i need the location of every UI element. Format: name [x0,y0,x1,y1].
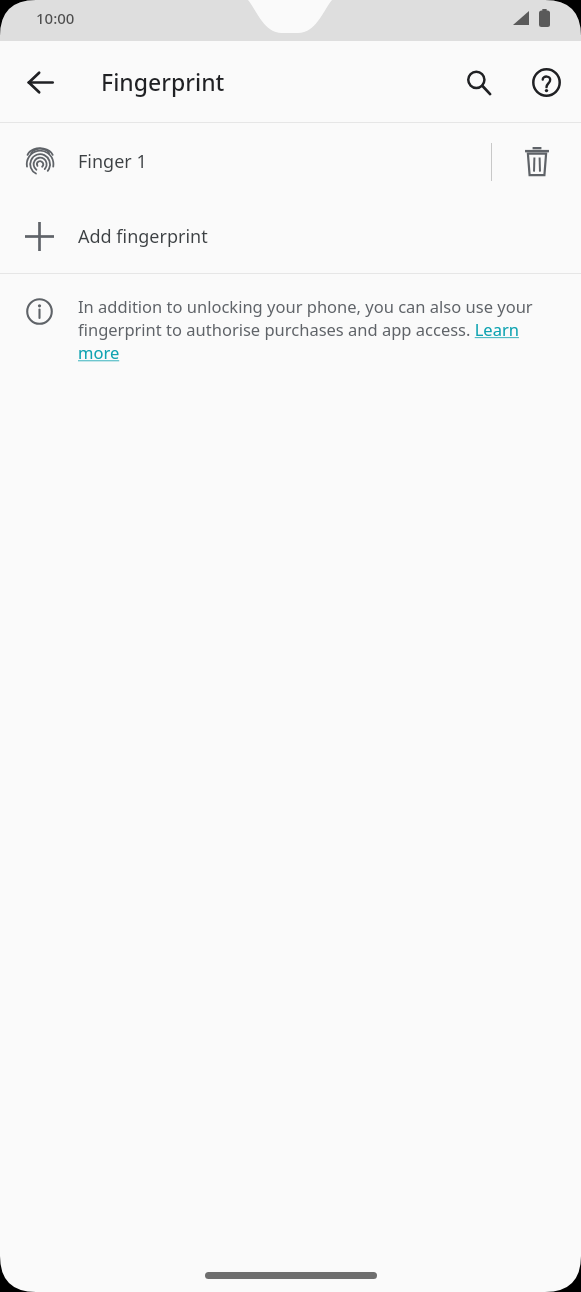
button[interactable]: Delete fingerprint [492,123,581,200]
button[interactable]: Search [454,58,502,106]
staticText: 10:00 [36,8,75,28]
button[interactable]: Finger 1 [0,123,581,200]
button[interactable]: Back [16,58,64,106]
staticText: Fingerprint [101,66,225,97]
button[interactable]: In addition to unlocking your phone, you… [78,295,539,364]
button[interactable]: Help [522,58,570,106]
button[interactable]: Add fingerprint [0,200,581,273]
staticText: Add fingerprint [78,224,208,249]
staticText: Finger 1 [78,149,147,174]
